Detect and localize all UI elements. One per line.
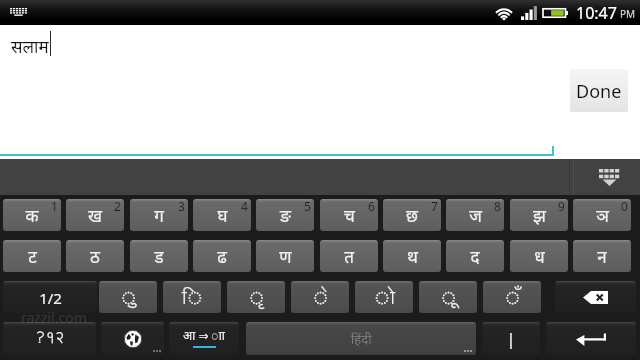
button[interactable]: ङ bbox=[256, 199, 314, 231]
staticText: हिंदी bbox=[351, 330, 372, 348]
button[interactable]: ड bbox=[130, 240, 188, 272]
staticText: ग bbox=[154, 204, 164, 227]
staticText: क bbox=[25, 204, 39, 227]
staticText: 6 bbox=[368, 199, 375, 214]
staticText: 2 bbox=[114, 199, 121, 214]
staticText: 8 bbox=[494, 199, 501, 214]
button[interactable]: ◌ू bbox=[419, 281, 477, 313]
staticText: PM bbox=[620, 7, 636, 21]
staticText: ◌ि bbox=[182, 284, 203, 313]
staticText: ज bbox=[469, 204, 482, 227]
button[interactable]: Change language bbox=[101, 322, 164, 355]
staticText: 0 bbox=[621, 199, 628, 214]
button[interactable]: ◌ो bbox=[355, 281, 413, 313]
button[interactable]: | bbox=[482, 322, 540, 355]
button[interactable]: आ ⇒ ाा bbox=[169, 322, 239, 355]
staticText: ण bbox=[279, 245, 292, 268]
staticText: ◌ृ bbox=[248, 284, 265, 313]
staticText: सलाम bbox=[11, 35, 49, 58]
staticText: न bbox=[597, 245, 607, 268]
staticText: झ bbox=[533, 204, 546, 227]
button[interactable]: ढ bbox=[193, 240, 251, 272]
staticText: च bbox=[344, 204, 355, 227]
button[interactable]: ख bbox=[66, 199, 124, 231]
staticText: 5 bbox=[304, 199, 311, 214]
button[interactable]: Hide keyboard bbox=[578, 159, 640, 195]
staticText: छ bbox=[406, 204, 418, 227]
staticText: ◌ो bbox=[374, 284, 395, 313]
button[interactable]: ◌ँ bbox=[483, 281, 541, 313]
staticText: 1 bbox=[51, 199, 58, 214]
button[interactable]: ज bbox=[446, 199, 504, 231]
staticText: ङ bbox=[280, 204, 291, 227]
staticText: आ ⇒ ाा bbox=[183, 327, 225, 343]
button[interactable]: ◌े bbox=[291, 281, 349, 313]
staticText: ◌ु bbox=[120, 284, 137, 313]
button[interactable]: Enter bbox=[546, 322, 636, 355]
staticText: ढ bbox=[217, 245, 227, 268]
staticText: Done bbox=[576, 79, 622, 104]
staticText: ◌ू bbox=[440, 284, 457, 313]
staticText: ?१२ bbox=[35, 327, 65, 351]
staticText: 1/2 bbox=[39, 288, 62, 308]
staticText: 10:47 bbox=[576, 2, 617, 24]
button[interactable]: 1/2 bbox=[3, 281, 97, 313]
staticText: 9 bbox=[558, 199, 565, 214]
button[interactable]: हिंदी bbox=[246, 322, 476, 355]
button[interactable]: Input method bbox=[7, 0, 29, 25]
staticText: 3 bbox=[178, 199, 185, 214]
staticText: ठ bbox=[90, 245, 100, 268]
button[interactable]: ◌ृ bbox=[227, 281, 285, 313]
button[interactable]: ञ bbox=[573, 199, 631, 231]
button[interactable]: झ bbox=[510, 199, 568, 231]
button[interactable]: ध bbox=[510, 240, 568, 272]
staticText: थ bbox=[407, 245, 418, 268]
button[interactable]: ण bbox=[256, 240, 314, 272]
staticText: द bbox=[470, 245, 480, 268]
staticText: ◌े bbox=[312, 284, 329, 313]
staticText: | bbox=[506, 327, 516, 350]
staticText: razzil.com bbox=[21, 308, 87, 327]
staticText: ट bbox=[28, 245, 37, 268]
button[interactable]: ग bbox=[130, 199, 188, 231]
staticText: ञ bbox=[596, 204, 609, 227]
button[interactable]: Done bbox=[570, 69, 628, 112]
button[interactable]: ◌ु bbox=[99, 281, 157, 313]
button[interactable]: च bbox=[320, 199, 378, 231]
button[interactable]: न bbox=[573, 240, 631, 272]
button[interactable]: घ bbox=[193, 199, 251, 231]
button[interactable]: ठ bbox=[66, 240, 124, 272]
staticText: 4 bbox=[241, 199, 248, 214]
staticText: ख bbox=[88, 204, 102, 227]
button[interactable]: ट bbox=[3, 240, 61, 272]
staticText: ◌ँ bbox=[504, 284, 521, 313]
staticText: ध bbox=[534, 245, 545, 268]
button[interactable]: द bbox=[446, 240, 504, 272]
staticText: 7 bbox=[431, 199, 438, 214]
button[interactable]: थ bbox=[383, 240, 441, 272]
staticText: त bbox=[344, 245, 354, 268]
button[interactable]: छ bbox=[383, 199, 441, 231]
button[interactable]: ◌ि bbox=[163, 281, 221, 313]
button[interactable]: ?१२ bbox=[3, 322, 96, 355]
staticText: घ bbox=[217, 204, 228, 227]
button[interactable]: क bbox=[3, 199, 61, 231]
staticText: ड bbox=[154, 245, 164, 268]
button[interactable]: Backspace bbox=[555, 281, 636, 313]
button[interactable]: त bbox=[320, 240, 378, 272]
